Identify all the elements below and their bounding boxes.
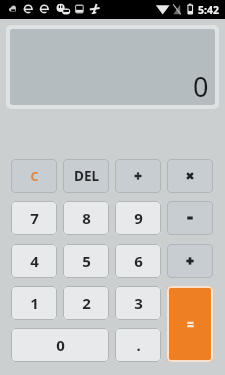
button[interactable]: 5 [63,244,109,278]
button[interactable]: Divide [115,159,161,193]
button[interactable]: . [115,328,161,362]
staticText: 3 [134,293,143,313]
staticText: 4 [30,251,39,271]
button[interactable]: Minus [167,201,213,235]
button[interactable]: 3 [115,286,161,320]
staticText: 6 [134,251,143,271]
staticText: 0 [56,335,65,355]
button[interactable]: DEL [63,159,109,193]
button[interactable]: Equals [167,286,213,362]
button[interactable]: 2 [63,286,109,320]
staticText: . [136,335,141,355]
button[interactable]: 7 [11,201,57,235]
staticText: 2 [82,293,91,313]
button[interactable]: Plus [167,244,213,278]
staticText: 5 [82,251,91,271]
button[interactable]: C [11,159,57,193]
staticText: 1 [30,293,39,313]
staticText: 9 [134,208,143,228]
staticText: C [30,168,39,185]
button[interactable]: 0 [11,328,109,362]
staticText: 5:42 [198,3,219,17]
staticText: 7 [30,208,39,228]
button[interactable]: 6 [115,244,161,278]
staticText: DEL [74,167,99,185]
button[interactable]: 4 [11,244,57,278]
button[interactable]: 1 [11,286,57,320]
button[interactable]: Multiply [167,159,213,193]
staticText: 0 [193,68,209,105]
staticText: 8 [82,208,91,228]
button[interactable]: 9 [115,201,161,235]
button[interactable]: 8 [63,201,109,235]
